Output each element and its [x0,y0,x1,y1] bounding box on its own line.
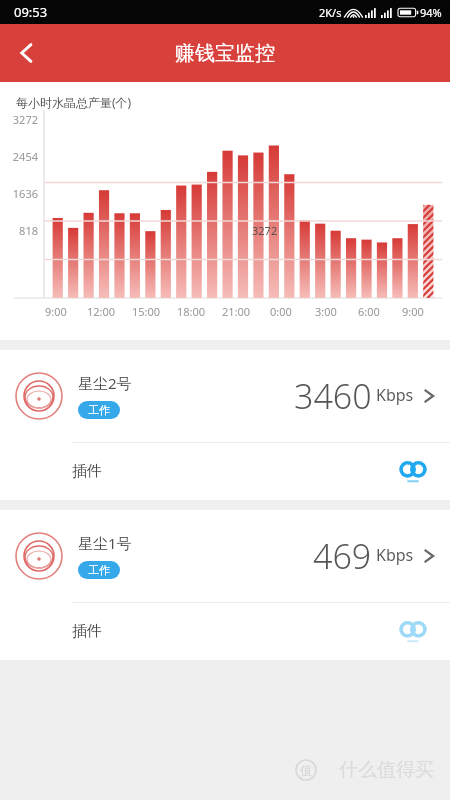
staticText: 9:00 [45,304,67,319]
other: Plugin [398,461,428,483]
other: Device [14,371,64,421]
staticText: 3272 [0,112,38,127]
staticText: 值 [300,763,312,778]
staticText: 插件 [72,622,102,641]
staticText: 3:00 [315,304,337,319]
staticText: 3272 [252,223,278,238]
staticText: 09:53 [14,3,48,21]
staticText: 每小时水晶总产量(个) [16,94,132,110]
button[interactable]: Device [0,350,450,442]
staticText: 星尘2号 [78,373,132,393]
staticText: 818 [0,223,38,238]
staticText: 2K/s [319,5,342,20]
button[interactable]: Device [0,510,450,602]
staticText: Kbps [376,384,414,406]
staticText: 18:00 [177,304,206,319]
staticText: 0:00 [270,304,292,319]
staticText: 工作 [88,563,110,577]
staticText: 插件 [72,462,102,481]
staticText: 21:00 [222,304,251,319]
other: Device [14,531,64,581]
staticText: 6:00 [358,304,380,319]
staticText: 什么值得买 [339,758,434,782]
staticText: 工作 [88,403,110,417]
staticText: 赚钱宝监控 [175,41,275,66]
staticText: 1636 [0,186,38,201]
staticText: 2454 [0,149,38,164]
button[interactable]: 插件 [0,603,450,660]
staticText: 3460 [294,373,372,419]
staticText: 15:00 [132,304,161,319]
other: Plugin [398,621,428,643]
staticText: 星尘1号 [78,533,132,553]
staticText: 12:00 [87,304,116,319]
staticText: 469 [313,533,372,579]
button[interactable]: Back [0,26,54,80]
staticText: Kbps [376,544,414,566]
staticText: 9:00 [402,304,424,319]
button[interactable]: 插件 [0,443,450,500]
staticText: 94% [420,5,442,20]
